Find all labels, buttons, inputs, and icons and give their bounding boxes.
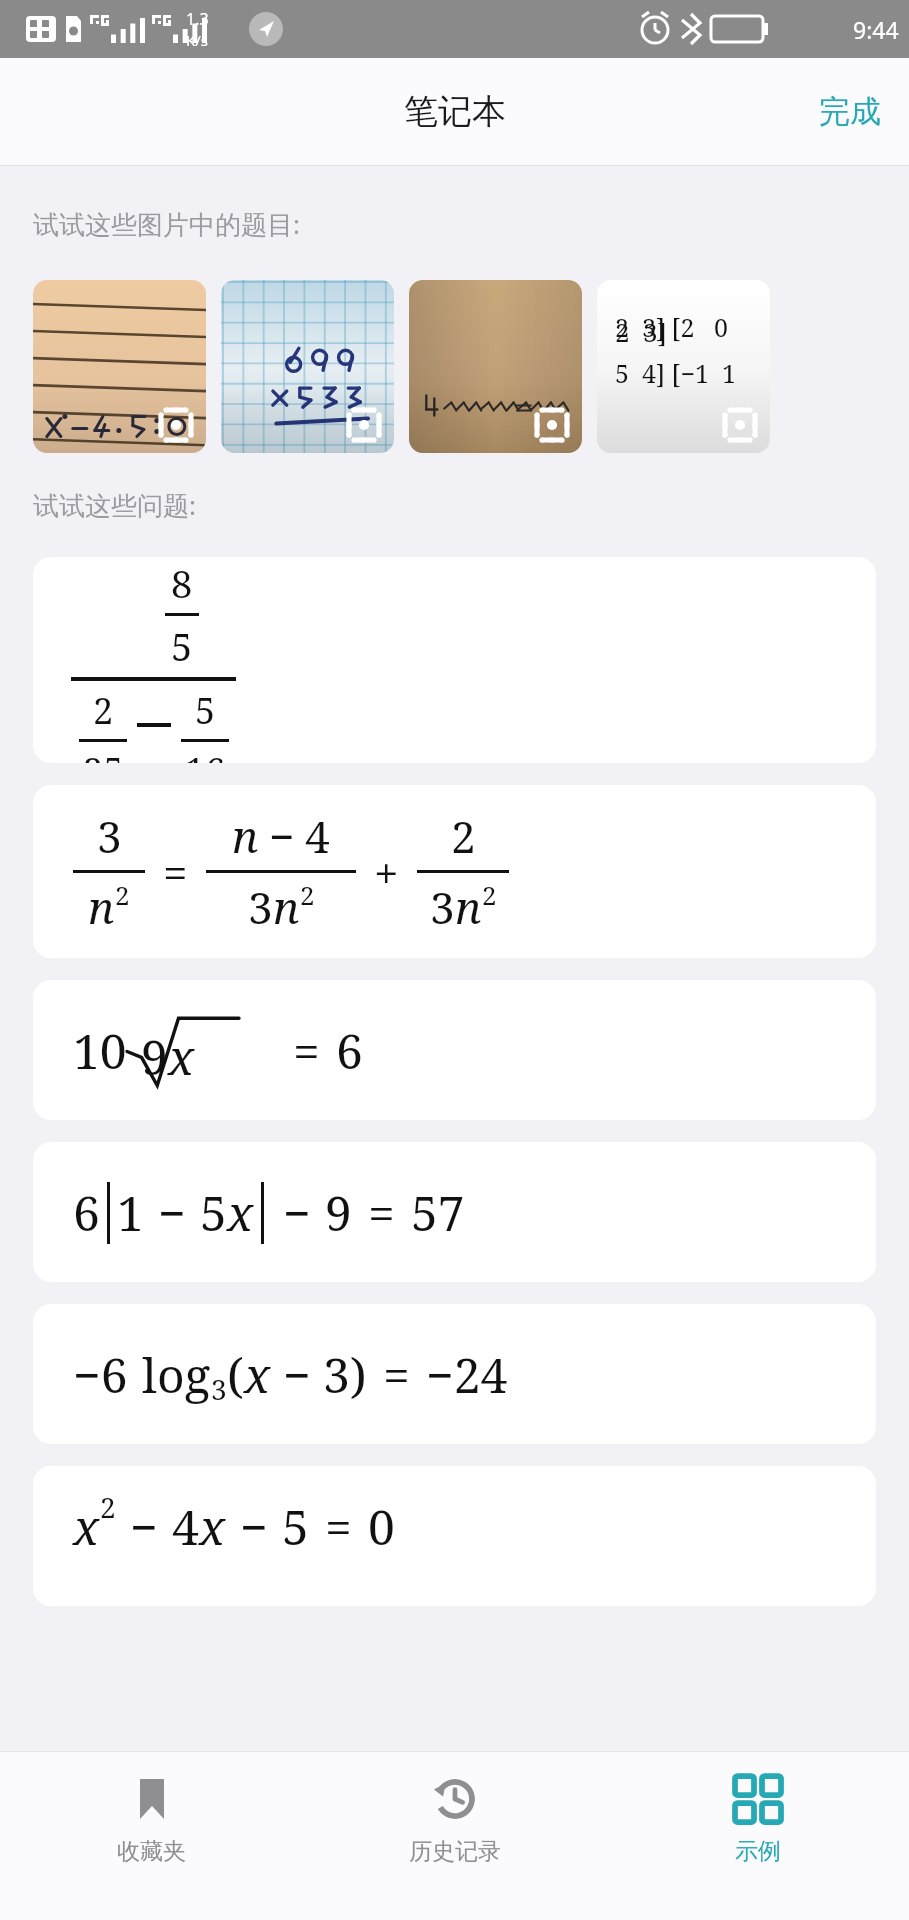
staticText: 2: [451, 806, 476, 866]
staticText: 试试这些图片中的题目:: [33, 206, 300, 242]
button[interactable]: −6: [33, 1304, 876, 1444]
button[interactable]: 收藏夹: [0, 1752, 303, 1920]
staticText: 8: [171, 557, 193, 609]
staticText: 示例: [735, 1837, 781, 1866]
staticText: 历史记录: [409, 1837, 501, 1866]
staticText: 试试这些问题:: [33, 487, 196, 523]
button[interactable]: Scan sample photo: [221, 280, 394, 453]
staticText: −6: [73, 1342, 128, 1407]
staticText: 3: [430, 877, 455, 937]
staticText: =: [163, 842, 188, 902]
staticText: −24: [426, 1342, 508, 1407]
staticText: =: [383, 1342, 410, 1407]
button[interactable]: Scan sample photo: [33, 280, 206, 453]
button[interactable]: x: [33, 1466, 876, 1606]
staticText: 9: [325, 1180, 352, 1245]
staticText: 1: [117, 1180, 144, 1245]
staticText: =: [368, 1180, 395, 1245]
staticText: 6: [73, 1180, 100, 1245]
staticText: 笔记本: [404, 90, 506, 133]
staticText: 3: [323, 1342, 350, 1407]
staticText: −: [158, 1180, 186, 1245]
staticText: ): [350, 1342, 367, 1407]
staticText: 5: [282, 1494, 309, 1559]
staticText: 2: [300, 877, 315, 912]
staticText: 3: [97, 806, 122, 866]
staticText: x: [227, 1180, 254, 1245]
staticText: 5: [195, 686, 216, 735]
staticText: 3: [248, 877, 273, 937]
staticText: K/s: [186, 30, 209, 50]
staticText: 5: [200, 1180, 227, 1245]
button[interactable]: Scan sample photo: [597, 280, 770, 453]
staticText: 16: [185, 746, 226, 763]
button[interactable]: 6: [33, 1142, 876, 1282]
staticText: 5 4] [−1 1: [615, 356, 736, 390]
staticText: 2 3] [2 0: [615, 310, 728, 344]
staticText: x: [73, 1494, 100, 1559]
staticText: x: [244, 1342, 271, 1407]
staticText: =: [325, 1494, 352, 1559]
staticText: 10: [73, 1018, 127, 1083]
staticText: x: [199, 1494, 226, 1559]
staticText: 收藏夹: [117, 1837, 186, 1866]
staticText: 4: [172, 1494, 199, 1559]
staticText: 2: [482, 877, 497, 912]
staticText: 3: [211, 1370, 227, 1408]
staticText: 2 3]: [615, 314, 667, 349]
staticText: 57: [411, 1180, 465, 1245]
staticText: 2: [93, 686, 114, 735]
staticText: log: [142, 1342, 211, 1407]
staticText: (: [227, 1342, 244, 1407]
staticText: =: [293, 1018, 320, 1083]
staticText: 0: [368, 1494, 395, 1559]
staticText: 1.3: [186, 8, 209, 30]
staticText: 6: [336, 1018, 363, 1083]
staticText: 4: [305, 806, 330, 866]
staticText: −: [240, 1494, 268, 1559]
staticText: 9: [141, 1024, 168, 1089]
staticText: +: [374, 842, 399, 902]
staticText: x: [168, 1024, 195, 1089]
button[interactable]: 历史记录: [303, 1752, 606, 1920]
staticText: −: [283, 1342, 311, 1407]
button[interactable]: 示例: [606, 1752, 909, 1920]
button[interactable]: 8: [33, 557, 876, 763]
button[interactable]: 完成: [791, 74, 909, 149]
staticText: 9:44: [853, 14, 899, 45]
staticText: n: [232, 806, 259, 866]
staticText: 2: [100, 1488, 116, 1526]
button[interactable]: 3: [33, 785, 876, 958]
staticText: n: [88, 877, 115, 937]
staticText: −: [283, 1180, 311, 1245]
staticText: n: [455, 877, 482, 937]
staticText: 2: [115, 877, 130, 912]
staticText: 5: [171, 620, 193, 672]
staticText: 完成: [819, 92, 881, 131]
staticText: −: [130, 1494, 158, 1559]
staticText: −: [269, 806, 295, 866]
staticText: 25: [83, 746, 124, 763]
button[interactable]: 10: [33, 980, 876, 1120]
button[interactable]: Scan sample photo: [409, 280, 582, 453]
staticText: n: [273, 877, 300, 937]
